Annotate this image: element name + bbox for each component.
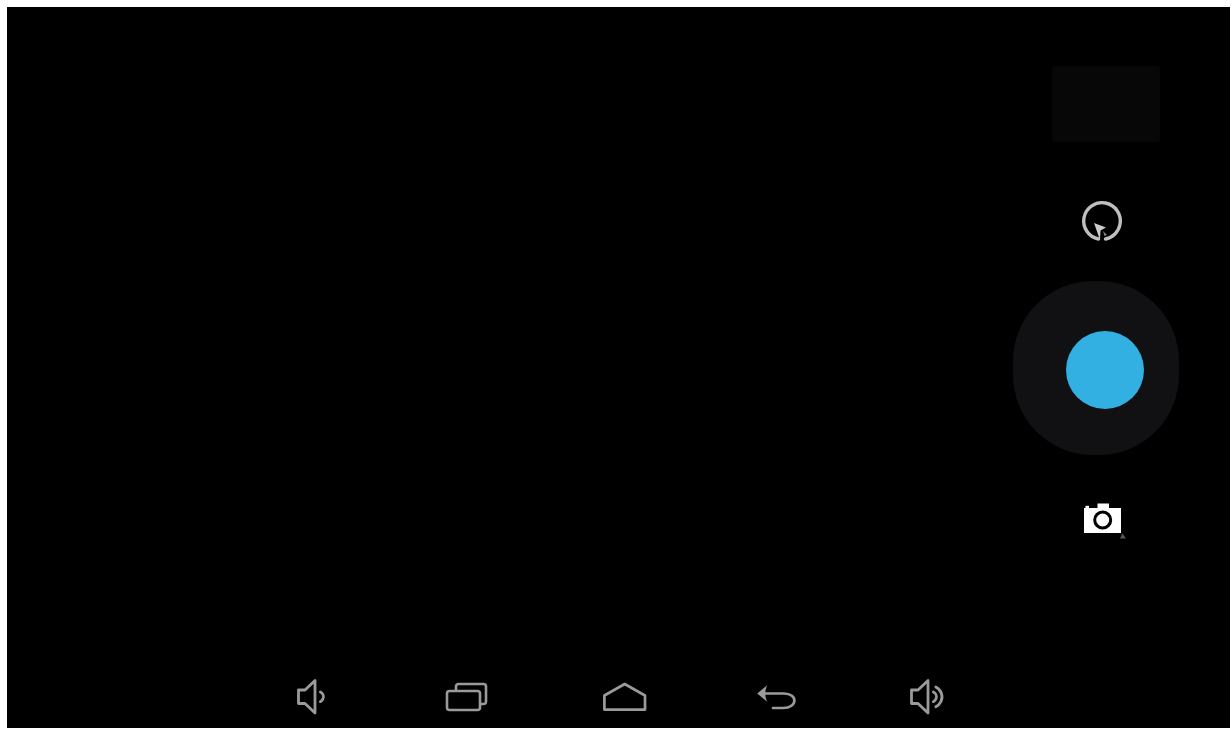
button[interactable]: Home (601, 674, 649, 722)
button[interactable]: Volume down (291, 674, 339, 722)
button[interactable]: Camera mode (1074, 494, 1134, 546)
button[interactable]: Shutter (1013, 281, 1179, 455)
button[interactable]: Back (754, 672, 802, 720)
button[interactable]: Recent apps (444, 672, 492, 720)
button[interactable]: Volume up (904, 674, 952, 722)
button[interactable]: Camera settings (1070, 189, 1134, 253)
